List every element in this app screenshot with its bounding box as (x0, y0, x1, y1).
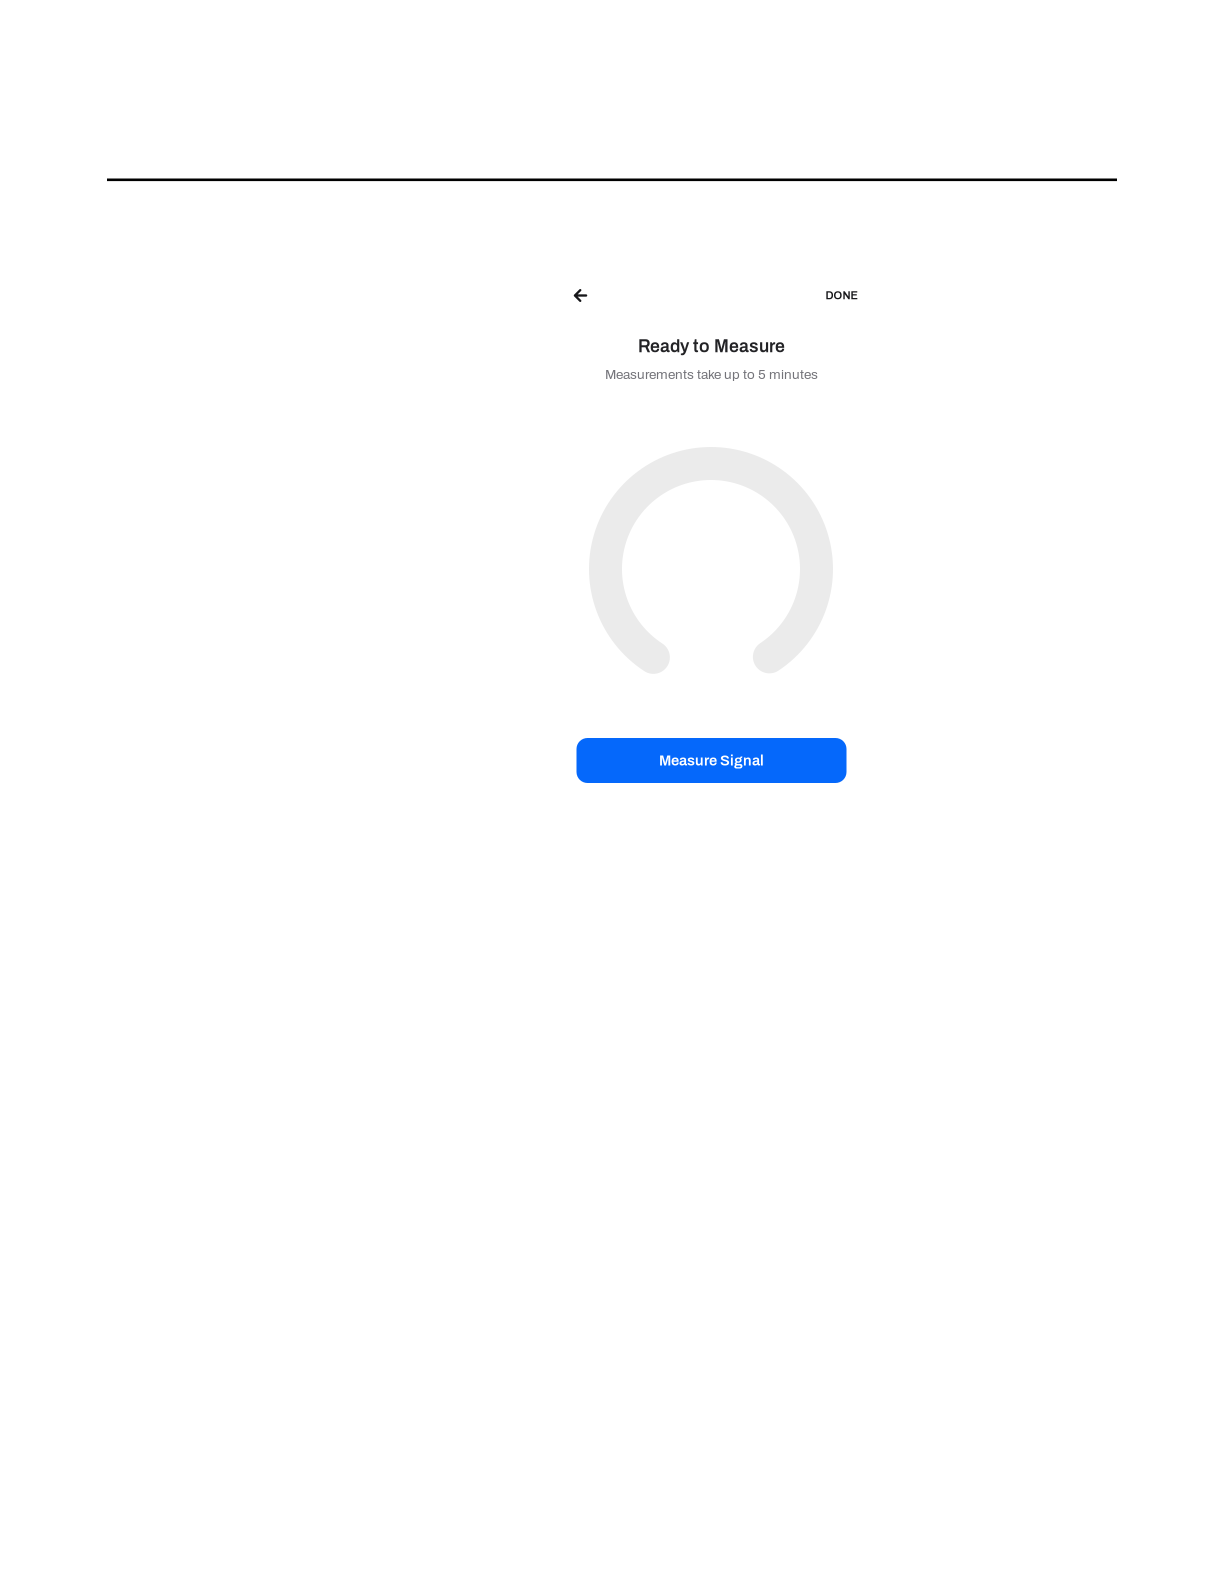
staticText: Measurements take up to 5 minutes (605, 367, 818, 382)
button[interactable]: Back (564, 279, 597, 312)
button[interactable]: Measure Signal (576, 738, 846, 783)
staticText: Ready to Measure (638, 337, 785, 356)
button[interactable]: DONE (816, 281, 866, 311)
staticText: Measure Signal (659, 752, 764, 768)
staticText: DONE (825, 290, 857, 302)
